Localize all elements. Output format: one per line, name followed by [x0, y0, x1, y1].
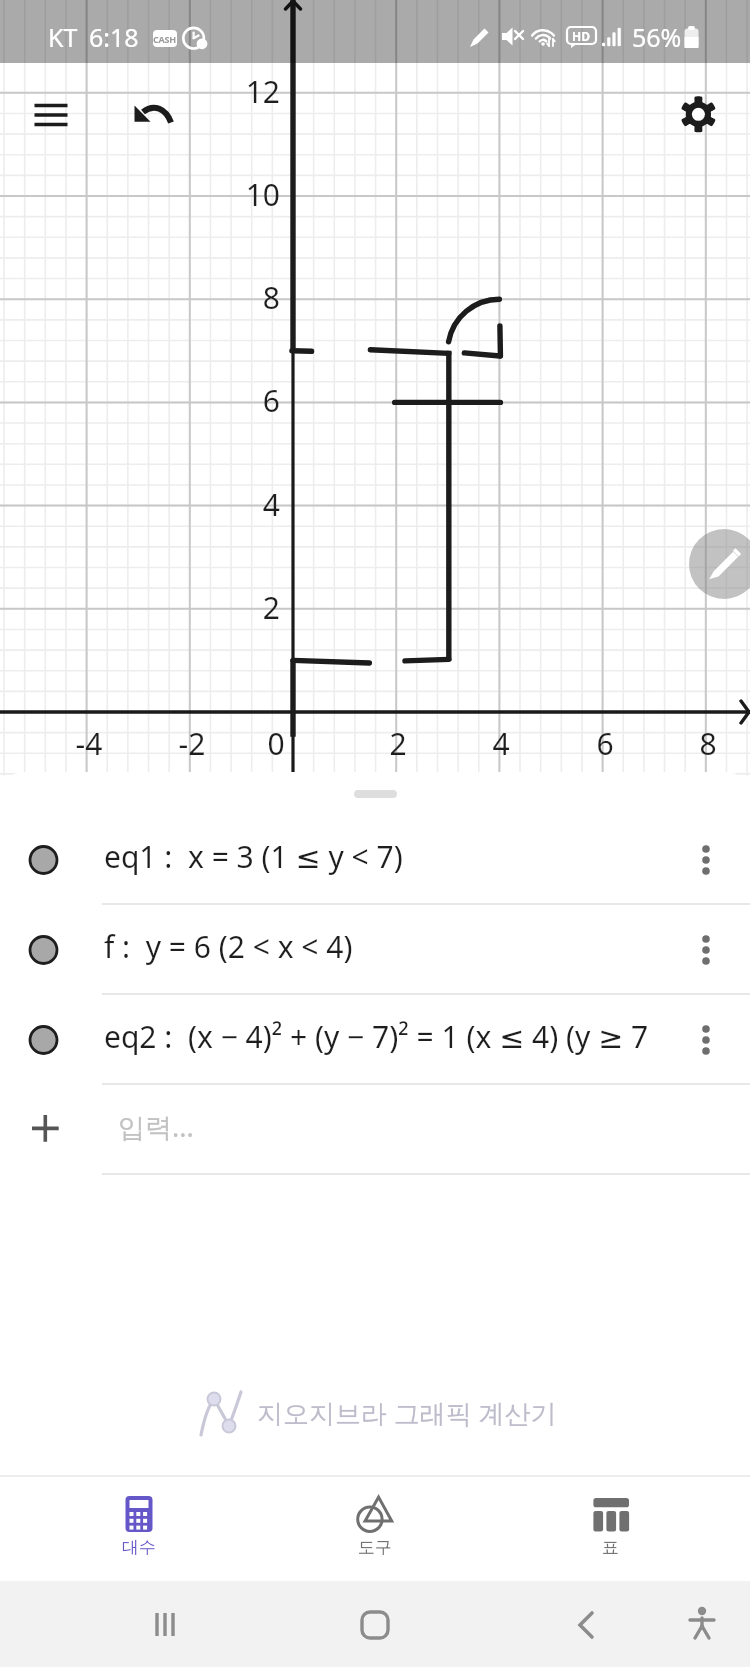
staticText: 입력...	[118, 1108, 194, 1145]
button[interactable]: Home	[345, 1581, 405, 1667]
staticText: 12	[200, 71, 280, 112]
button[interactable]: f : y = 6 (2 < x < 4)	[0, 905, 750, 995]
staticText: 2	[200, 587, 280, 628]
button[interactable]: Back	[556, 1581, 616, 1667]
button[interactable]: Recents	[135, 1581, 195, 1667]
staticText: 6:18	[89, 20, 139, 54]
button[interactable]: Draw	[689, 529, 750, 599]
button[interactable]: 대수	[79, 1475, 199, 1581]
button[interactable]: Menu	[18, 84, 84, 150]
staticText: HD	[572, 28, 590, 44]
staticText: -4	[49, 723, 129, 764]
staticText: eq2 : (x − 4)² + (y − 7)² = 1 (x ≤ 4) (y…	[104, 1016, 649, 1057]
staticText: f : y = 6 (2 < x < 4)	[104, 926, 353, 967]
button[interactable]: 표	[550, 1475, 670, 1581]
staticText: 표	[602, 1537, 619, 1558]
staticText: CASH	[153, 33, 177, 45]
staticText: -2	[152, 723, 232, 764]
button[interactable]: Undo	[128, 95, 180, 140]
button[interactable]: 도구	[315, 1475, 435, 1581]
staticText: 6	[565, 723, 645, 764]
staticText: 지오지브라 그래픽 계산기	[257, 1395, 557, 1431]
staticText: 56%	[632, 20, 682, 54]
staticText: 0	[236, 723, 316, 764]
button[interactable]: Settings	[667, 83, 730, 146]
staticText: 4	[461, 723, 541, 764]
staticText: 6	[200, 380, 280, 421]
staticText: 4	[200, 484, 280, 525]
button[interactable]: eq2 : (x − 4)² + (y − 7)² = 1 (x ≤ 4) (y…	[0, 995, 750, 1085]
staticText: 10	[200, 174, 280, 215]
button[interactable]: Accessibility	[672, 1581, 732, 1667]
button[interactable]: 지오지브라 그래픽 계산기	[0, 1387, 750, 1439]
staticText: 2	[358, 723, 438, 764]
staticText: 대수	[122, 1537, 156, 1558]
staticText: 8	[668, 723, 748, 764]
staticText: 8	[200, 277, 280, 318]
staticText: KT	[48, 20, 78, 54]
staticText: eq1 : x = 3 (1 ≤ y < 7)	[104, 836, 403, 877]
staticText: 도구	[358, 1537, 392, 1558]
button[interactable]: eq1 : x = 3 (1 ≤ y < 7)	[0, 815, 750, 905]
button[interactable]: 입력...	[0, 1085, 750, 1175]
